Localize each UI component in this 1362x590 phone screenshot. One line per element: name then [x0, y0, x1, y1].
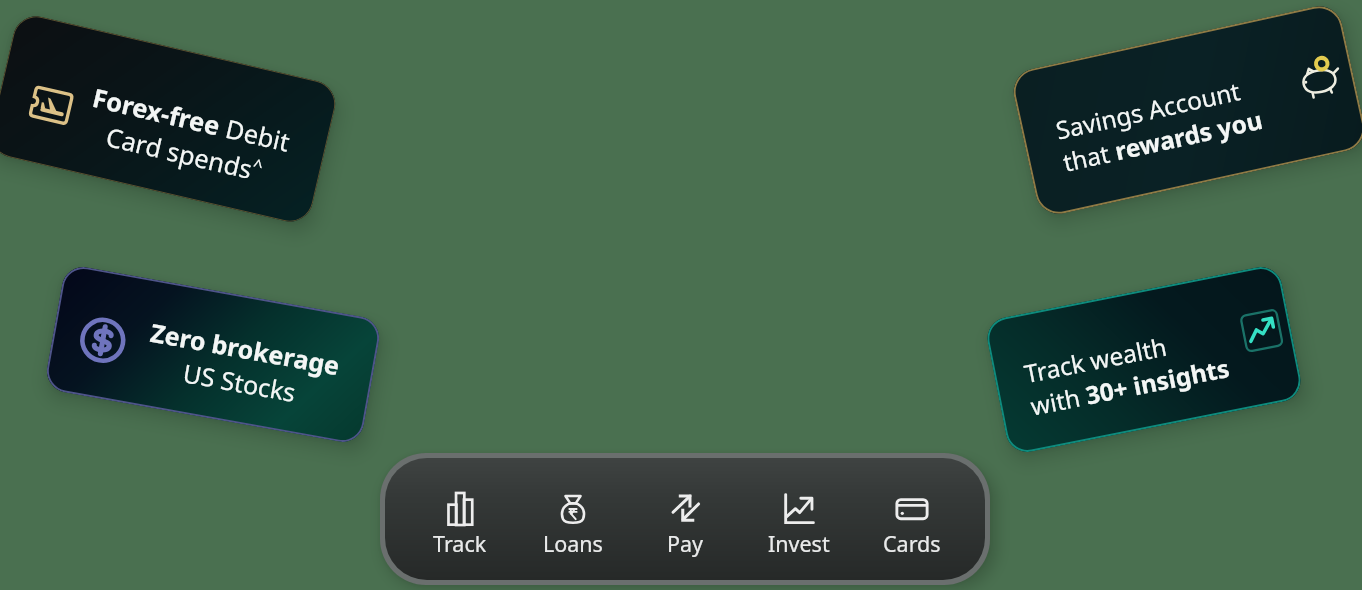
button[interactable]: Track wealth: [984, 263, 1304, 456]
button[interactable]: Savings Account: [1009, 2, 1362, 218]
staticText: Invest: [768, 529, 830, 558]
button[interactable]: Forex-free: [0, 11, 340, 226]
staticText: 30+ insights: [1083, 351, 1232, 412]
staticText: Loans: [543, 529, 603, 558]
staticText: with: [1028, 379, 1089, 422]
staticText: Cards: [883, 529, 941, 558]
button[interactable]: Invest: [742, 485, 855, 564]
staticText: Track wealth: [1021, 330, 1170, 390]
staticText: Savings Account: [1053, 74, 1243, 147]
button[interactable]: Loans: [516, 485, 629, 564]
staticText: Debit: [216, 109, 294, 160]
staticText: Forex-free: [89, 80, 224, 144]
button[interactable]: Zero brokerage: [43, 263, 383, 445]
staticText: Track: [433, 529, 487, 558]
staticText: ^: [250, 153, 265, 178]
staticText: Card spends: [103, 119, 256, 187]
staticText: Zero brokerage: [148, 315, 343, 382]
button[interactable]: Track: [403, 485, 516, 564]
button[interactable]: Cards: [855, 485, 968, 564]
button[interactable]: Pay: [629, 485, 742, 564]
staticText: Pay: [667, 529, 704, 558]
staticText: rewards you: [1112, 103, 1266, 167]
staticText: that: [1060, 135, 1119, 179]
staticText: US Stocks: [180, 355, 299, 409]
